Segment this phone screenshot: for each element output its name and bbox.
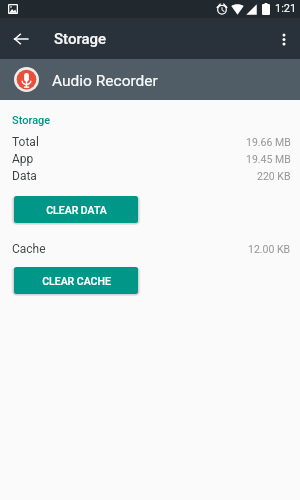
button[interactable]: More options	[270, 25, 298, 53]
button[interactable]: CLEAR DATA	[14, 196, 138, 223]
staticText: 19.66 MB	[246, 136, 291, 148]
staticText: Storage	[12, 114, 51, 127]
staticText: Storage	[54, 30, 107, 48]
staticText: CLEAR DATA	[46, 204, 107, 216]
staticText: CLEAR CACHE	[42, 275, 111, 287]
staticText: Audio Recorder	[52, 72, 158, 90]
button[interactable]: CLEAR CACHE	[14, 267, 138, 294]
staticText: Total	[12, 135, 39, 149]
staticText: 220 KB	[257, 170, 291, 182]
staticText: 19.45 MB	[246, 153, 291, 165]
staticText: Data	[12, 169, 37, 183]
staticText: Cache	[12, 242, 46, 256]
staticText: App	[12, 152, 34, 166]
staticText: 12.00 KB	[248, 243, 291, 255]
button[interactable]: Navigate up	[7, 25, 35, 53]
staticText: 1:21	[275, 2, 297, 15]
